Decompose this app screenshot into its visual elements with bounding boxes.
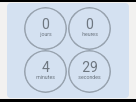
staticText: 0 [86,16,94,32]
button[interactable]: 29 [68,50,111,93]
staticText: secondes [78,74,101,80]
button[interactable]: 0 [68,7,111,50]
staticText: 0 [42,16,50,32]
button[interactable]: 4 [24,50,67,93]
button[interactable]: 0 [24,7,67,50]
staticText: jours [40,31,52,37]
staticText: 4 [42,59,50,75]
staticText: minutes [36,74,55,80]
staticText: 29 [82,59,98,75]
staticText: heures [82,31,98,37]
